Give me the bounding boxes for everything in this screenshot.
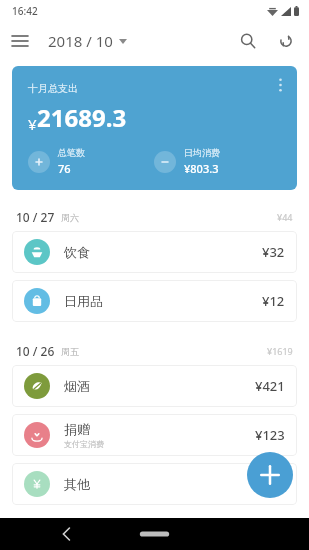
- button[interactable]: 其他: [12, 463, 297, 505]
- button[interactable]: 十月总支出: [12, 66, 297, 190]
- staticText: ¥32: [262, 243, 285, 261]
- button[interactable]: 饮食: [12, 231, 297, 273]
- button[interactable]: Menu: [0, 22, 40, 60]
- button[interactable]: 烟酒: [12, 365, 297, 407]
- staticText: 10 / 27: [16, 209, 55, 225]
- staticText: ¥123: [255, 426, 285, 444]
- staticText: 10 / 26: [16, 343, 55, 359]
- staticText: 日均消费: [184, 147, 220, 158]
- staticText: ¥1619: [267, 345, 293, 357]
- staticText: 16:42: [12, 4, 38, 18]
- staticText: ¥: [28, 114, 37, 134]
- staticText: 其他: [64, 476, 90, 492]
- staticText: ¥12: [262, 292, 285, 310]
- staticText: 2018 / 10: [48, 31, 113, 51]
- staticText: 十月总支出: [28, 82, 78, 95]
- staticText: 76: [58, 161, 71, 176]
- button[interactable]: 捐赠: [12, 414, 297, 456]
- button[interactable]: Refresh: [267, 22, 305, 60]
- staticText: ¥421: [255, 377, 285, 395]
- staticText: 支付宝消费: [64, 439, 104, 449]
- staticText: 烟酒: [64, 378, 90, 394]
- button[interactable]: Add record: [247, 452, 293, 498]
- staticText: 周五: [61, 346, 79, 357]
- staticText: 21689.3: [37, 101, 127, 134]
- staticText: 日用品: [64, 293, 103, 309]
- staticText: 捐赠: [64, 421, 90, 437]
- staticText: ¥803.3: [184, 161, 219, 176]
- button[interactable]: Search: [229, 22, 267, 60]
- staticText: 饮食: [64, 244, 90, 260]
- button[interactable]: 日用品: [12, 280, 297, 322]
- button[interactable]: 2018 / 10: [40, 25, 135, 57]
- staticText: 周六: [61, 212, 79, 223]
- button[interactable]: More options: [269, 74, 291, 96]
- staticText: ¥44: [277, 211, 293, 223]
- staticText: 总笔数: [58, 147, 85, 158]
